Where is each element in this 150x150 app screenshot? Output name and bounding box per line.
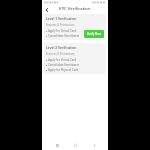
- staticText: Level 1 Verification: [46, 16, 77, 21]
- button[interactable]: Level 2 Verification: [44, 43, 106, 74]
- staticText: Consolidate Remittance: [48, 34, 80, 38]
- staticText: Apply for Physical Card: [48, 68, 79, 72]
- staticText: Apply for Virtual Card: [48, 58, 77, 62]
- staticText: Level 2 Verification: [46, 45, 77, 50]
- staticText: Features & Permissions: [46, 23, 75, 27]
- staticText: Consolidate Remittance: [48, 63, 80, 67]
- button[interactable]: Back: [90, 141, 98, 149]
- staticText: Apply for Virtual Card: [48, 29, 77, 33]
- button[interactable]: Home: [71, 141, 79, 149]
- staticText: KYC Verification: [59, 6, 91, 12]
- button[interactable]: Recent apps: [53, 141, 61, 149]
- staticText: Verify Now: [87, 32, 101, 36]
- button[interactable]: Verify Now: [84, 30, 104, 38]
- staticText: Features & Permissions: [46, 52, 75, 56]
- button[interactable]: Level 1 Verification: [44, 14, 106, 40]
- button[interactable]: Back: [43, 6, 50, 13]
